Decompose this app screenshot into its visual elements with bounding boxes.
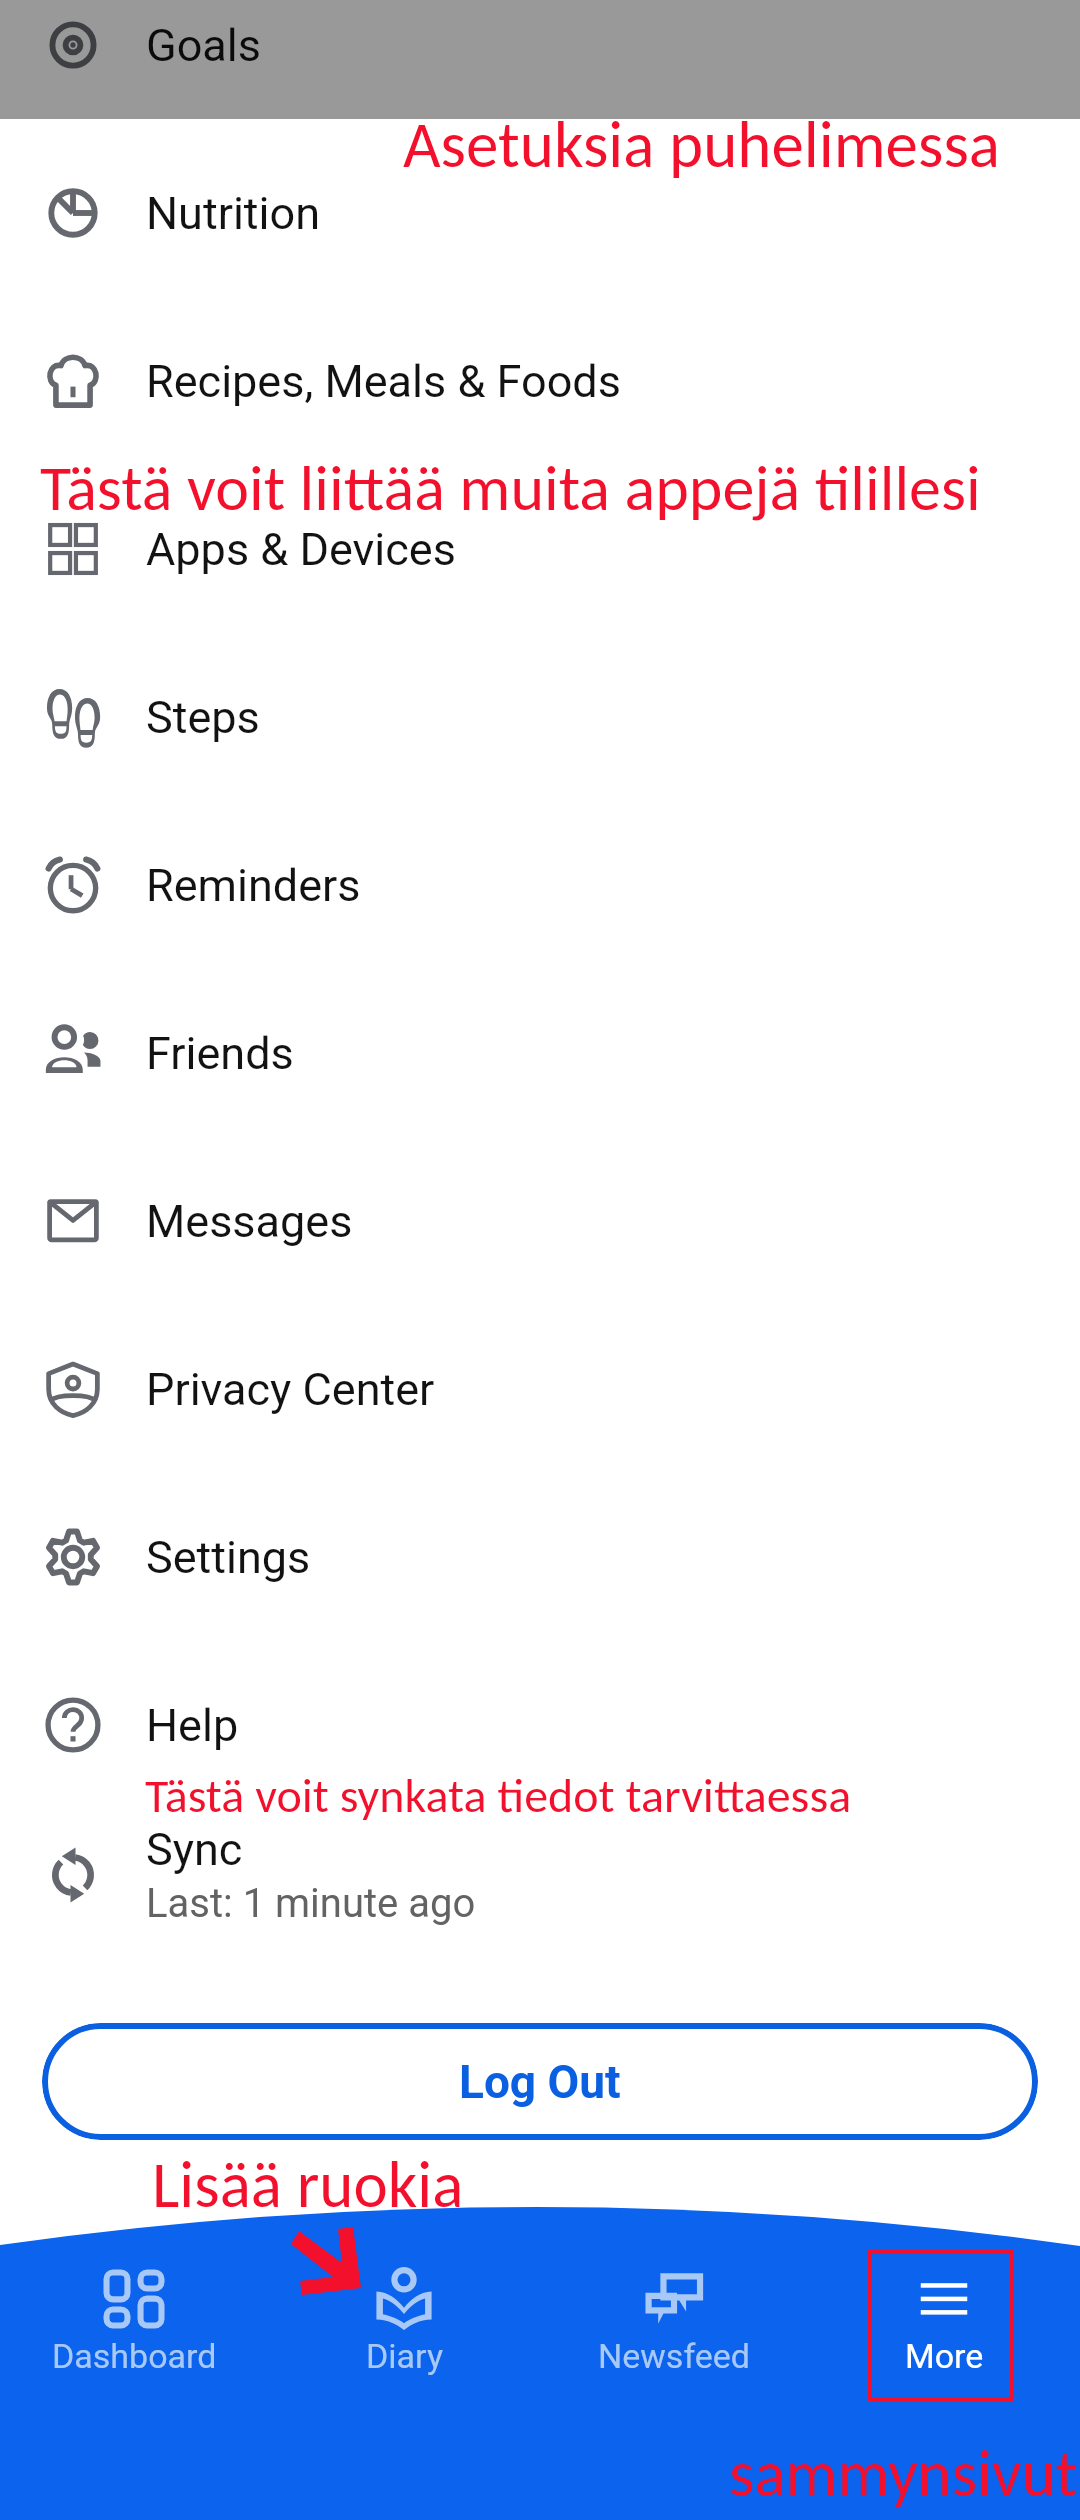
staticText: Dashboard (52, 2336, 217, 2376)
button[interactable]: More (809, 2254, 1079, 2386)
staticText: Tästä voit synkata tiedot tarvittaessa (145, 1766, 852, 1825)
staticText: Messages (146, 1195, 353, 1248)
button[interactable]: Diary (269, 2254, 539, 2386)
staticText: Privacy Center (146, 1363, 435, 1416)
button[interactable]: Dashboard (0, 2254, 269, 2386)
button[interactable]: Goals (0, 0, 1080, 129)
staticText: Diary (366, 2336, 443, 2376)
staticText: Asetuksia puhelimessa (403, 105, 1000, 184)
button[interactable]: Steps (0, 633, 1080, 801)
staticText: Friends (146, 1027, 294, 1080)
button[interactable]: Settings (0, 1473, 1080, 1641)
button[interactable]: Friends (0, 969, 1080, 1137)
button[interactable]: Newsfeed (539, 2254, 809, 2386)
staticText: Sync (146, 1823, 243, 1876)
button[interactable]: Reminders (0, 801, 1080, 969)
staticText: Goals (146, 19, 261, 72)
staticText: Reminders (146, 859, 361, 912)
staticText: Log Out (459, 2055, 621, 2109)
button[interactable]: Sync (0, 1791, 1080, 1959)
staticText: More (905, 2336, 984, 2376)
button[interactable]: Nutrition (0, 129, 1080, 297)
staticText: Settings (146, 1531, 311, 1584)
button[interactable]: Recipes, Meals & Foods (0, 297, 1080, 465)
staticText: Recipes, Meals & Foods (146, 355, 621, 408)
staticText: Steps (146, 691, 260, 744)
button[interactable]: Help (0, 1641, 1080, 1809)
staticText: sammynsivut (729, 2434, 1078, 2513)
staticText: Tästä voit liittää muita appejä tililles… (40, 449, 981, 527)
staticText: Apps & Devices (146, 523, 456, 576)
staticText: Newsfeed (598, 2336, 751, 2376)
staticText: Nutrition (146, 187, 321, 240)
button[interactable]: Apps & Devices (0, 465, 1080, 633)
button[interactable]: Log Out (42, 2023, 1038, 2140)
staticText: Help (146, 1699, 239, 1752)
staticText: Lisää ruokia (152, 2145, 464, 2224)
staticText: Last: 1 minute ago (146, 1880, 476, 1927)
button[interactable]: Privacy Center (0, 1305, 1080, 1473)
button[interactable]: Messages (0, 1137, 1080, 1305)
